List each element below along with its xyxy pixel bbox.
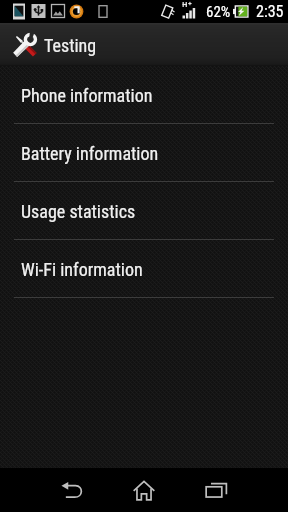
button[interactable]: Battery information (0, 124, 288, 182)
staticText: Usage statistics (21, 201, 136, 222)
staticText: Phone information (21, 85, 153, 106)
staticText: Testing (44, 35, 97, 56)
button[interactable]: Home (96, 468, 192, 512)
button[interactable]: Usage statistics (0, 182, 288, 240)
button[interactable]: Recent apps (168, 468, 264, 512)
staticText: 62% (206, 3, 231, 21)
button[interactable]: Wi-Fi information (0, 240, 288, 298)
button[interactable]: Back (24, 468, 120, 512)
staticText: Wi-Fi information (21, 259, 143, 280)
button[interactable]: Phone information (0, 66, 288, 124)
staticText: Battery information (21, 143, 159, 164)
staticText: 2:35 (256, 2, 284, 21)
